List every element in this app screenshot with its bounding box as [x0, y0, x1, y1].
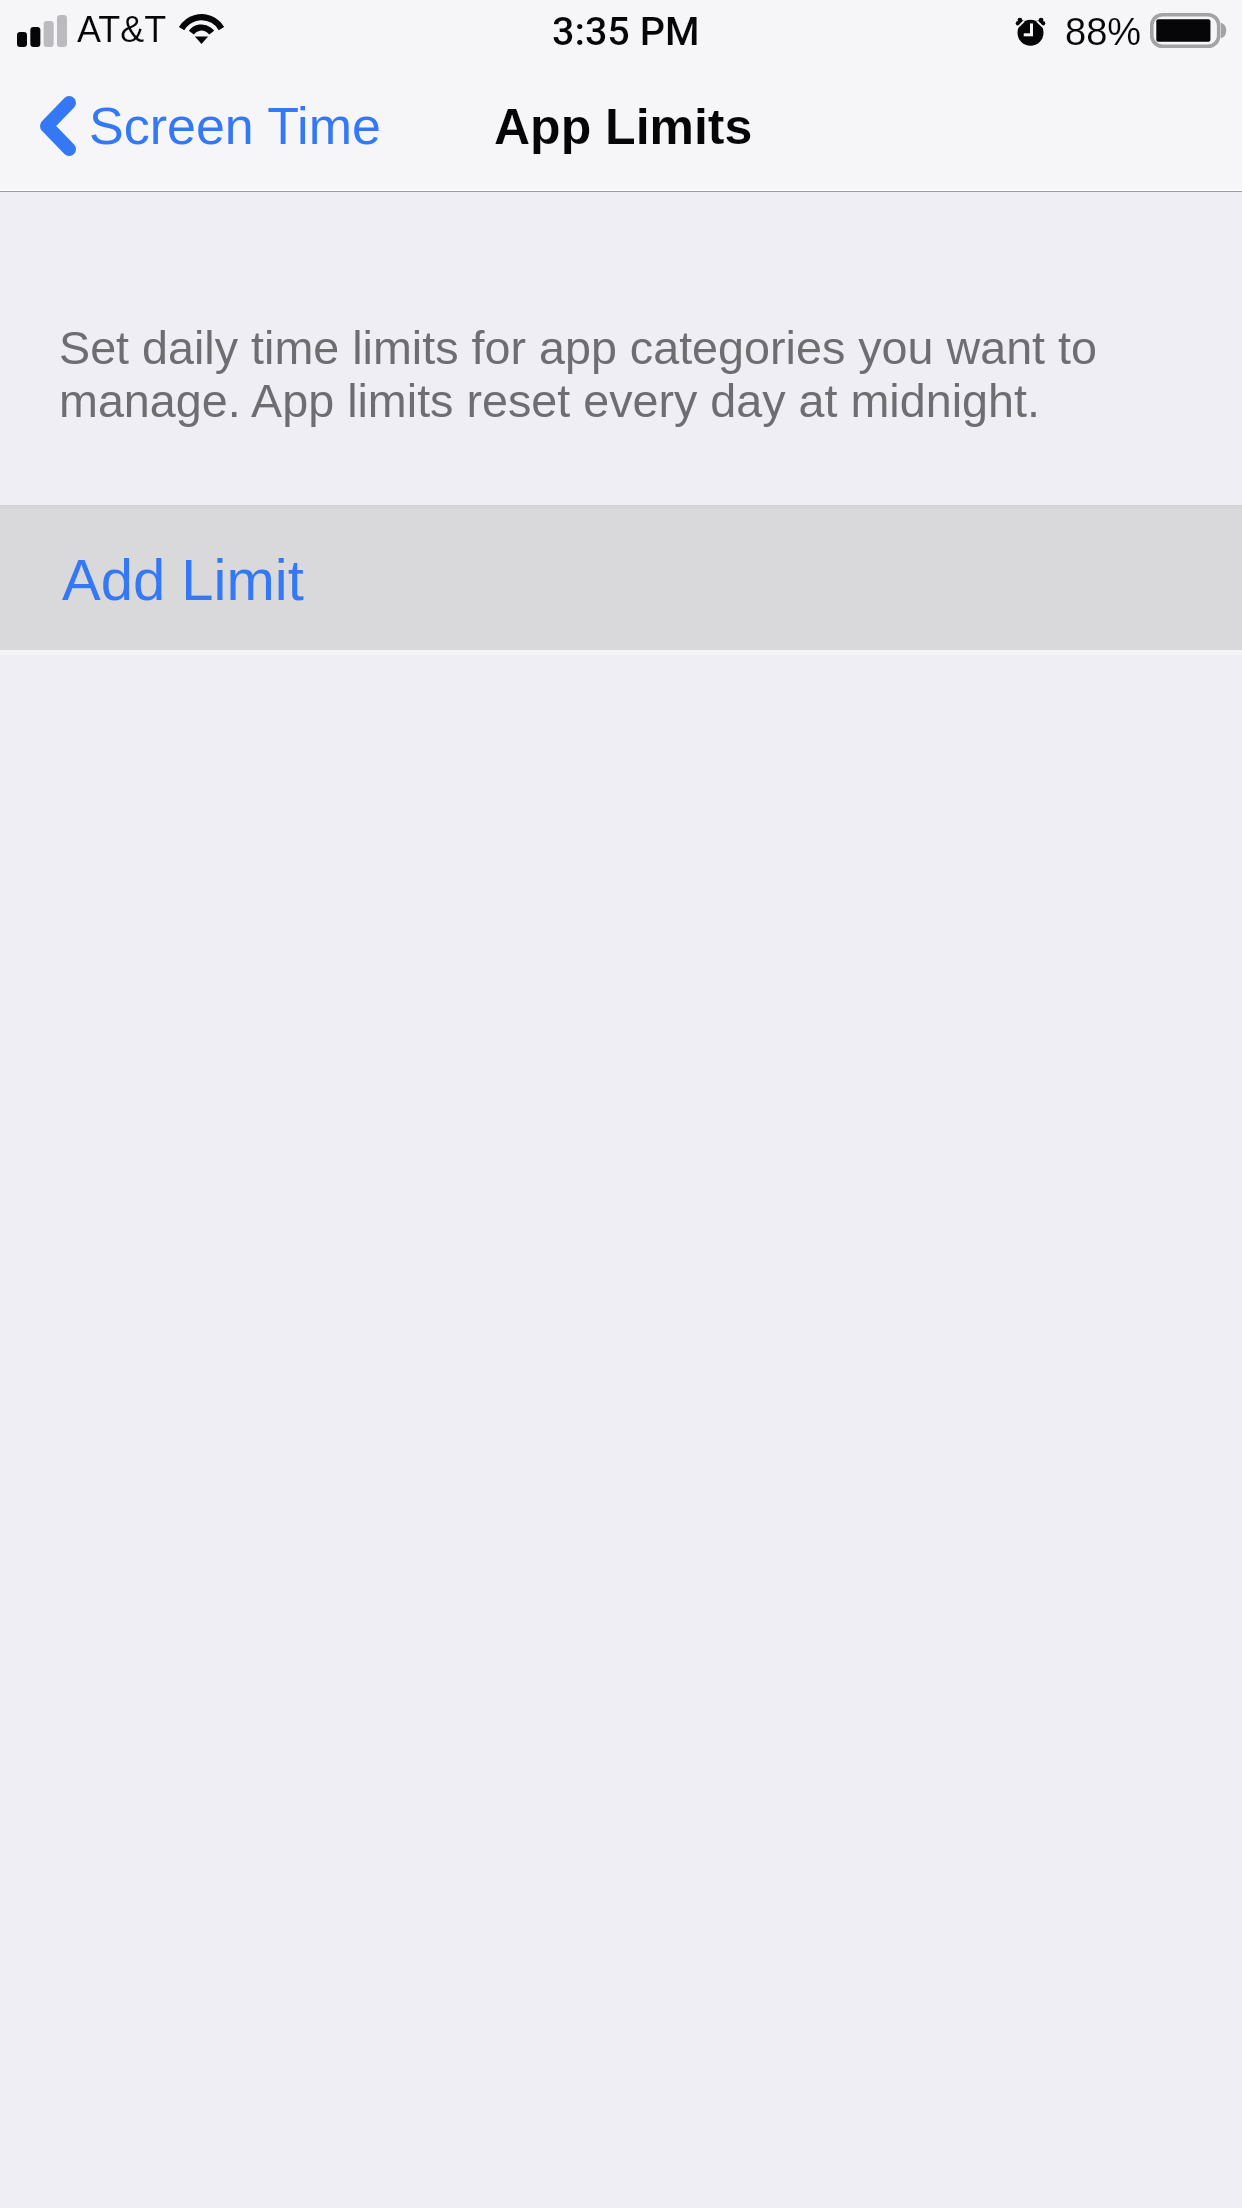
- staticText: 3:35 PM: [552, 8, 700, 54]
- other: Alarm set: [1016, 16, 1045, 46]
- other: Battery 88 percent: [1150, 13, 1229, 48]
- staticText: Add Limit: [62, 547, 304, 612]
- button[interactable]: Add Limit: [0, 505, 1242, 650]
- staticText: App Limits: [494, 99, 753, 155]
- staticText: AT&T: [77, 9, 167, 49]
- staticText: Set daily time limits for app categories…: [59, 322, 1097, 427]
- staticText: Screen Time: [89, 97, 381, 155]
- button[interactable]: Screen Time: [26, 70, 398, 192]
- other: Wi-Fi connected: [180, 14, 223, 44]
- other: Cellular signal strength: [17, 15, 67, 47]
- staticText: 88%: [1065, 11, 1142, 53]
